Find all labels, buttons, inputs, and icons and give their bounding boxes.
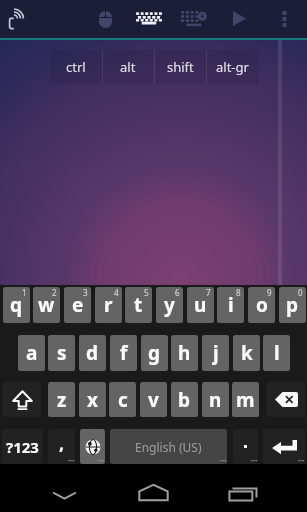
staticText: n <box>209 387 222 413</box>
button[interactable]: i <box>217 287 244 323</box>
button[interactable]: alt <box>102 50 154 84</box>
staticText: y <box>164 292 175 318</box>
staticText: z <box>57 387 67 413</box>
button[interactable]: m <box>232 382 259 417</box>
button[interactable]: b <box>171 382 198 417</box>
staticText: w <box>38 292 55 318</box>
staticText: k <box>241 340 253 366</box>
button[interactable]: Enter <box>263 429 305 464</box>
button[interactable]: ctrl <box>50 50 102 84</box>
staticText: q <box>10 292 23 318</box>
staticText: alt-gr <box>216 58 249 76</box>
staticText: a <box>26 340 38 366</box>
button[interactable]: Hide keyboard <box>52 491 77 500</box>
staticText: f <box>120 340 128 366</box>
staticText: 5 <box>144 287 149 298</box>
staticText: s <box>57 340 67 366</box>
staticText: x <box>87 387 98 413</box>
staticText: c <box>118 387 128 413</box>
button[interactable]: y <box>156 287 183 323</box>
button[interactable]: a <box>18 335 45 371</box>
staticText: ?123 <box>6 437 39 457</box>
staticText: 0 <box>298 287 303 298</box>
button[interactable]: j <box>202 335 229 371</box>
staticText: 7 <box>206 287 211 298</box>
button[interactable]: Download keyboard <box>181 11 207 25</box>
staticText: e <box>72 292 84 318</box>
staticText: p <box>286 292 299 318</box>
button[interactable]: Mouse <box>99 11 112 28</box>
staticText: g <box>148 340 161 366</box>
button[interactable]: shift <box>154 50 206 84</box>
staticText: j <box>213 340 219 366</box>
button[interactable]: alt-gr <box>206 50 258 84</box>
button[interactable]: Backspace <box>267 382 305 417</box>
staticText: o <box>256 292 268 318</box>
button[interactable]: Period <box>233 429 258 464</box>
button[interactable]: z <box>48 382 75 417</box>
staticText: 2 <box>52 287 57 298</box>
button[interactable]: x <box>79 382 106 417</box>
button[interactable]: s <box>48 335 75 371</box>
button[interactable]: g <box>141 335 168 371</box>
button[interactable]: t <box>125 287 152 323</box>
staticText: 9 <box>267 287 272 298</box>
staticText: h <box>178 340 191 366</box>
button[interactable]: q <box>3 287 30 323</box>
button[interactable]: k <box>233 335 260 371</box>
button[interactable]: w <box>33 287 60 323</box>
button[interactable]: Symbols <box>2 429 43 464</box>
staticText: b <box>178 387 191 413</box>
staticText: 1 <box>22 287 27 298</box>
staticText: , <box>59 431 65 456</box>
button[interactable]: d <box>79 335 106 371</box>
button[interactable]: u <box>187 287 214 323</box>
button[interactable]: c <box>109 382 136 417</box>
button[interactable]: Recent apps <box>228 485 259 502</box>
staticText: r <box>104 292 113 318</box>
staticText: English (US) <box>135 439 202 455</box>
staticText: i <box>228 292 234 318</box>
button[interactable]: Keyboard <box>136 11 162 24</box>
button[interactable]: l <box>263 335 290 371</box>
staticText: t <box>134 292 143 318</box>
staticText: m <box>236 387 255 413</box>
staticText: 3 <box>83 287 88 298</box>
button[interactable]: More options <box>281 11 289 27</box>
button[interactable]: e <box>64 287 91 323</box>
staticText: u <box>194 292 207 318</box>
staticText: shift <box>167 58 194 76</box>
button[interactable]: f <box>110 335 137 371</box>
button[interactable]: Shift <box>3 382 41 417</box>
staticText: d <box>86 340 99 366</box>
staticText: 6 <box>175 287 180 298</box>
button[interactable]: Play <box>233 11 246 26</box>
button[interactable]: Space <box>110 429 227 464</box>
button[interactable]: Comma <box>48 429 75 464</box>
button[interactable]: o <box>248 287 275 323</box>
button[interactable]: r <box>95 287 122 323</box>
staticText: 4 <box>114 287 119 298</box>
button[interactable]: Input method <box>5 5 30 35</box>
button[interactable]: p <box>279 287 306 323</box>
button[interactable]: Home <box>138 483 169 502</box>
button[interactable]: h <box>171 335 198 371</box>
staticText: 8 <box>236 287 241 298</box>
staticText: v <box>148 387 159 413</box>
staticText: ctrl <box>66 58 86 76</box>
button[interactable]: n <box>202 382 229 417</box>
button[interactable]: v <box>140 382 167 417</box>
staticText: l <box>274 340 280 366</box>
button[interactable]: Change language <box>80 429 105 464</box>
staticText: alt <box>120 58 136 76</box>
